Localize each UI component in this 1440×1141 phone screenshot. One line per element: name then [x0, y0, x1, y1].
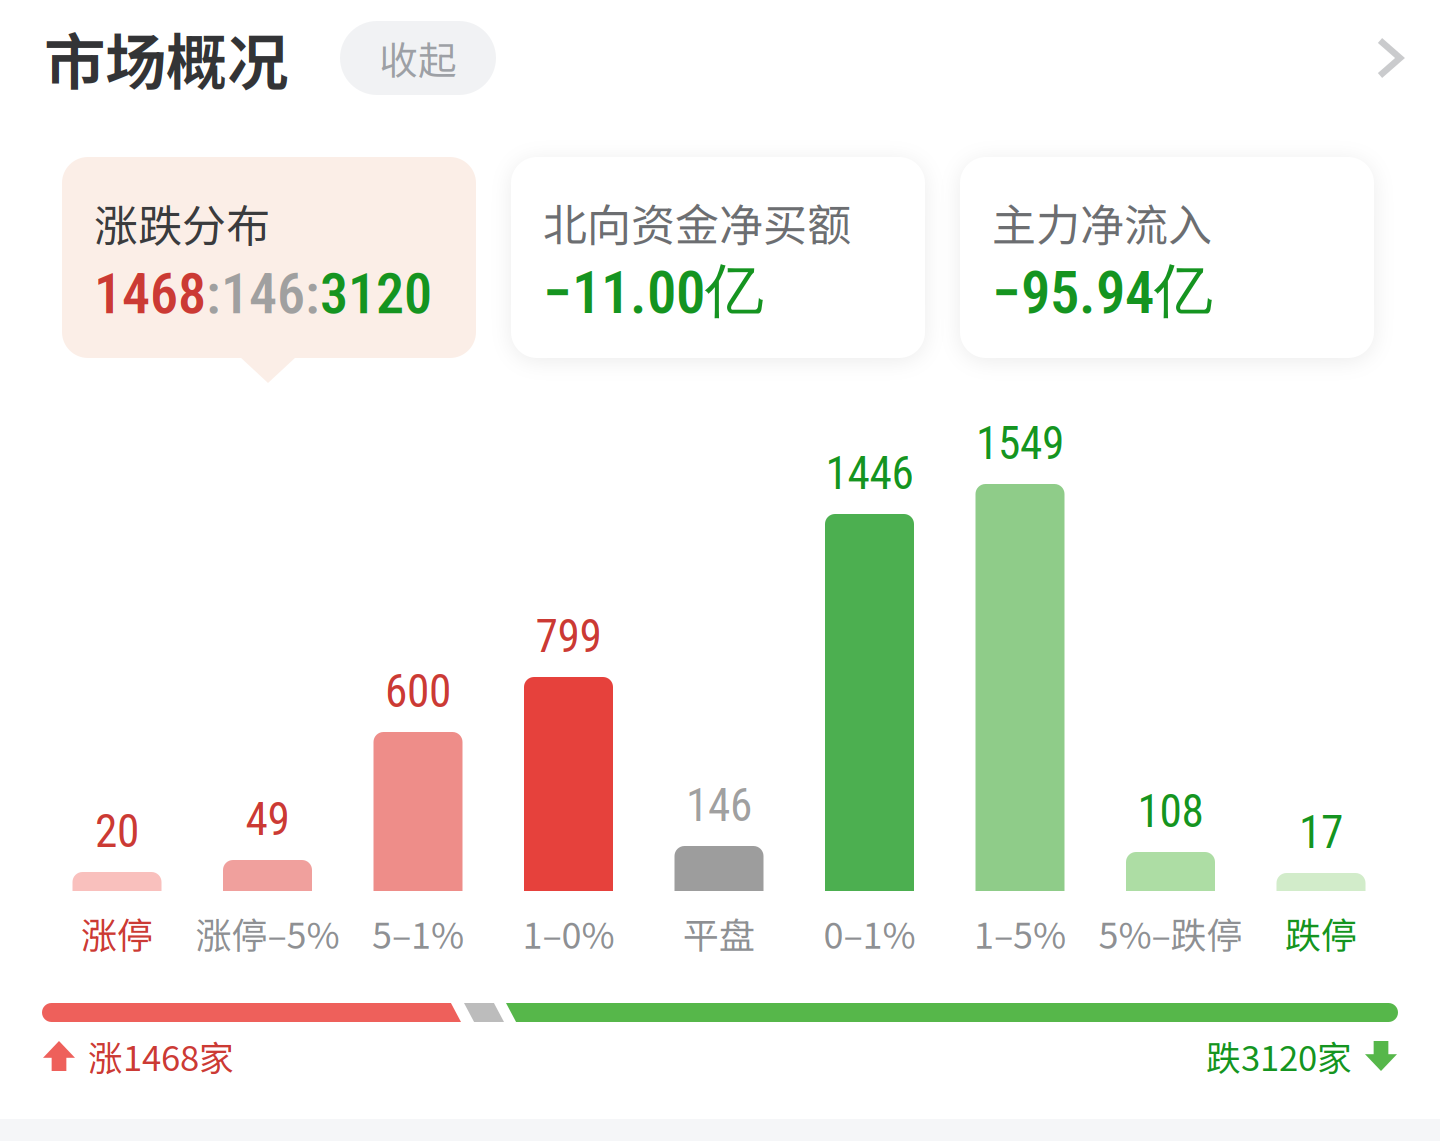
staticText: 涨停–5%	[195, 907, 339, 959]
staticText: −95.94亿	[992, 254, 1213, 328]
staticText: 600	[385, 665, 451, 718]
staticText: 1–0%	[522, 907, 614, 959]
staticText: 主力净流入	[992, 190, 1212, 254]
staticText: 跌3120家	[1206, 1031, 1352, 1081]
staticText: 收起	[379, 30, 457, 86]
staticText: 跌停	[1285, 907, 1357, 959]
button[interactable]: 1446	[794, 447, 944, 959]
staticText: 涨停	[81, 907, 153, 959]
staticText: 17	[1299, 806, 1343, 859]
staticText: 5%–跌停	[1098, 907, 1242, 959]
staticText: 3120	[320, 261, 432, 327]
button[interactable]: 收起	[340, 21, 496, 95]
staticText: 涨1468家	[88, 1031, 234, 1081]
staticText: 108	[1137, 785, 1203, 838]
staticText: :	[305, 261, 320, 327]
staticText: 1468	[94, 261, 206, 327]
staticText: 平盘	[683, 907, 755, 959]
staticText: 市场概况	[44, 14, 288, 102]
staticText: 1446	[825, 447, 913, 500]
staticText: 0–1%	[823, 907, 915, 959]
button[interactable]: 799	[493, 610, 643, 959]
staticText: 5–1%	[372, 907, 464, 959]
staticText: 1549	[976, 417, 1064, 470]
staticText: 涨跌分布	[94, 191, 270, 255]
button[interactable]: 涨跌分布	[62, 157, 476, 358]
staticText: 146	[221, 261, 305, 327]
button[interactable]: 20	[42, 805, 192, 959]
button[interactable]: 146	[644, 779, 794, 959]
button[interactable]: 49	[192, 793, 342, 959]
button[interactable]: 查看全部	[1362, 16, 1418, 99]
staticText: 799	[535, 610, 601, 663]
staticText: :	[206, 261, 221, 327]
button[interactable]: 600	[343, 665, 493, 959]
button[interactable]: 17	[1246, 806, 1396, 959]
staticText: −11.00亿	[543, 254, 764, 328]
staticText: 20	[95, 805, 139, 858]
button[interactable]: 北向资金净买额	[511, 157, 925, 358]
staticText: 1–5%	[974, 907, 1066, 959]
staticText: 49	[245, 793, 289, 846]
button[interactable]: 1549	[945, 417, 1095, 959]
button[interactable]: 108	[1095, 785, 1245, 959]
button[interactable]: 主力净流入	[960, 157, 1374, 358]
staticText: 146	[686, 779, 752, 832]
staticText: 北向资金净买额	[543, 190, 851, 254]
